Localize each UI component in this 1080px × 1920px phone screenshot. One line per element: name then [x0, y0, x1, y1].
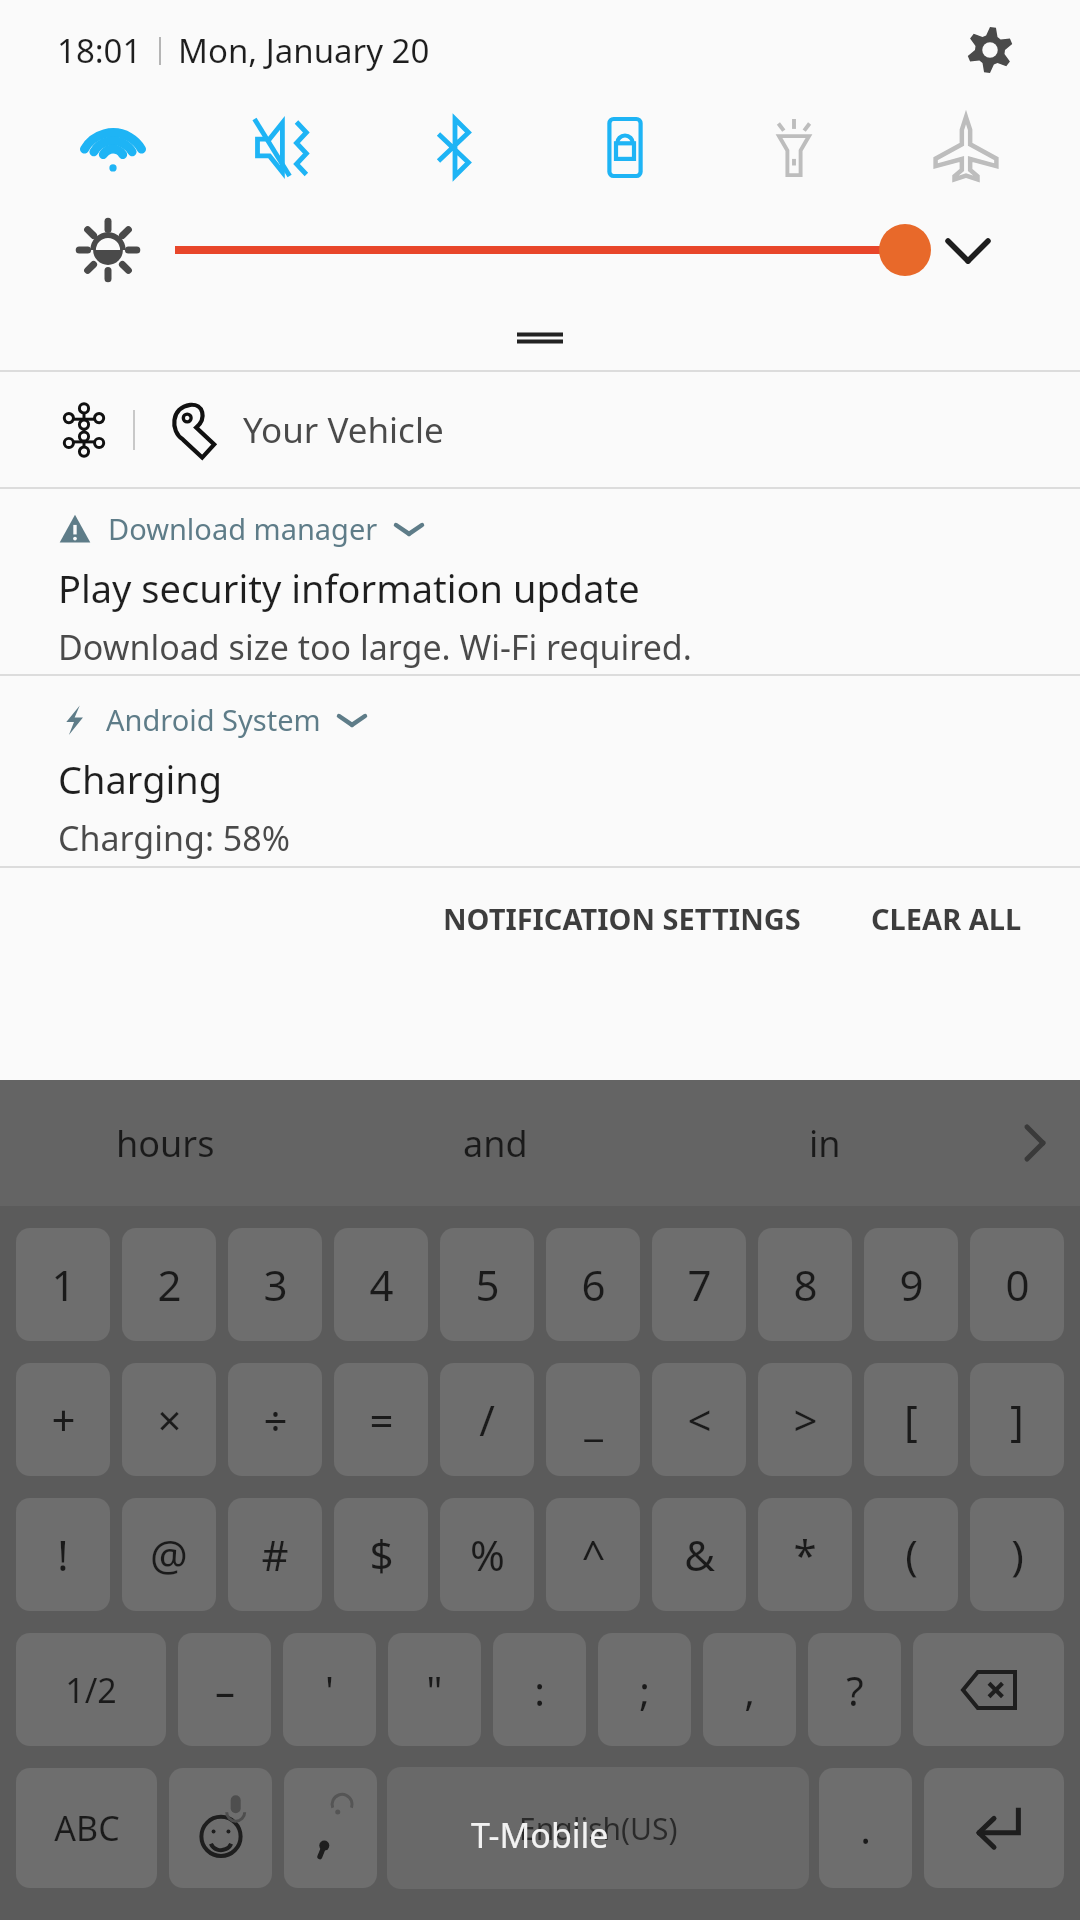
button[interactable]: ?: [808, 1633, 901, 1746]
button[interactable]: *: [758, 1498, 852, 1611]
button[interactable]: ,: [703, 1633, 796, 1746]
button[interactable]: .: [819, 1768, 912, 1888]
button[interactable]: 2: [122, 1228, 216, 1341]
staticText: 18:01: [57, 28, 142, 73]
button[interactable]: 7: [652, 1228, 746, 1341]
button[interactable]: ': [283, 1633, 376, 1746]
button[interactable]: Enter: [924, 1768, 1064, 1888]
staticText: =: [369, 1391, 394, 1448]
button[interactable]: hours: [0, 1080, 330, 1206]
button[interactable]: NOTIFICATION SETTINGS: [429, 881, 815, 956]
button[interactable]: Backspace: [913, 1633, 1064, 1746]
staticText: Your Vehicle: [243, 406, 444, 454]
staticText: Mon, January 20: [178, 28, 430, 73]
button[interactable]: Flashlight: [720, 100, 900, 195]
button[interactable]: English(US): [387, 1767, 809, 1889]
staticText: 0: [1005, 1256, 1030, 1313]
button[interactable]: Expand brightness: [970, 195, 1080, 305]
button[interactable]: CLEAR ALL: [857, 881, 1036, 956]
button[interactable]: ÷: [228, 1363, 322, 1476]
button[interactable]: !: [16, 1498, 110, 1611]
staticText: Play security information update: [58, 562, 640, 614]
button[interactable]: Your Vehicle: [0, 372, 1080, 487]
staticText: /: [479, 1391, 495, 1448]
button[interactable]: Wi-Fi: [0, 100, 180, 195]
button[interactable]: [: [864, 1363, 958, 1476]
staticText: Download size too large. Wi-Fi required.: [58, 624, 692, 670]
button[interactable]: _: [546, 1363, 640, 1476]
staticText: #: [261, 1526, 289, 1583]
staticText: in: [809, 1119, 841, 1168]
button[interactable]: :: [493, 1633, 586, 1746]
button[interactable]: 5: [440, 1228, 534, 1341]
staticText: 8: [793, 1256, 818, 1313]
staticText: ?: [846, 1663, 864, 1717]
staticText: NOTIFICATION SETTINGS: [443, 899, 801, 938]
button[interactable]: Bluetooth: [360, 100, 540, 195]
staticText: +: [51, 1391, 76, 1448]
button[interactable]: ): [970, 1498, 1064, 1611]
staticText: 1/2: [65, 1667, 117, 1713]
staticText: Android System: [106, 700, 321, 739]
staticText: 9: [899, 1256, 924, 1313]
staticText: ]: [1010, 1391, 1024, 1448]
button[interactable]: @: [122, 1498, 216, 1611]
button[interactable]: >: [758, 1363, 852, 1476]
button[interactable]: More suggestions: [990, 1080, 1080, 1206]
staticText: ": [426, 1663, 443, 1717]
button[interactable]: +: [16, 1363, 110, 1476]
staticText: ): [1011, 1526, 1024, 1583]
button[interactable]: ]: [970, 1363, 1064, 1476]
button[interactable]: ×: [122, 1363, 216, 1476]
button[interactable]: 0: [970, 1228, 1064, 1341]
button[interactable]: 3: [228, 1228, 322, 1341]
button[interactable]: 1/2: [16, 1633, 166, 1746]
staticText: :: [534, 1663, 545, 1717]
button[interactable]: =: [334, 1363, 428, 1476]
staticText: .: [860, 1801, 871, 1855]
button[interactable]: #: [228, 1498, 322, 1611]
button[interactable]: ABC: [16, 1768, 157, 1888]
button[interactable]: 8: [758, 1228, 852, 1341]
staticText: CLEAR ALL: [871, 899, 1022, 938]
button[interactable]: Sound: [180, 100, 360, 195]
button[interactable]: &: [652, 1498, 746, 1611]
staticText: [: [904, 1391, 918, 1448]
staticText: 7: [687, 1256, 712, 1313]
button[interactable]: –: [178, 1633, 271, 1746]
button[interactable]: Comma: [284, 1768, 377, 1888]
button[interactable]: 4: [334, 1228, 428, 1341]
button[interactable]: %: [440, 1498, 534, 1611]
button[interactable]: ^: [546, 1498, 640, 1611]
staticText: ;: [639, 1663, 650, 1717]
button[interactable]: and: [330, 1080, 660, 1206]
button[interactable]: Android System: [0, 676, 1080, 866]
button[interactable]: [0, 305, 1080, 370]
button[interactable]: Emoji: [169, 1768, 272, 1888]
button[interactable]: Download manager: [0, 489, 1080, 674]
button[interactable]: /: [440, 1363, 534, 1476]
button[interactable]: $: [334, 1498, 428, 1611]
button[interactable]: 6: [546, 1228, 640, 1341]
staticText: Charging: 58%: [58, 815, 290, 861]
button[interactable]: 1: [16, 1228, 110, 1341]
staticText: hours: [116, 1119, 215, 1168]
staticText: T-Mobile: [471, 1812, 609, 1858]
staticText: ÷: [263, 1391, 288, 1448]
button[interactable]: Auto rotate: [540, 100, 720, 195]
staticText: $: [369, 1526, 394, 1583]
button[interactable]: ": [388, 1633, 481, 1746]
button[interactable]: 9: [864, 1228, 958, 1341]
button[interactable]: (: [864, 1498, 958, 1611]
staticText: %: [470, 1526, 505, 1583]
button[interactable]: <: [652, 1363, 746, 1476]
staticText: 3: [263, 1256, 288, 1313]
staticText: and: [463, 1119, 528, 1168]
staticText: !: [57, 1526, 69, 1583]
button[interactable]: Settings: [962, 22, 1018, 78]
button[interactable]: Airplane mode: [900, 100, 1080, 195]
staticText: –: [215, 1663, 235, 1717]
staticText: _: [584, 1391, 603, 1448]
button[interactable]: in: [660, 1080, 990, 1206]
button[interactable]: ;: [598, 1633, 691, 1746]
